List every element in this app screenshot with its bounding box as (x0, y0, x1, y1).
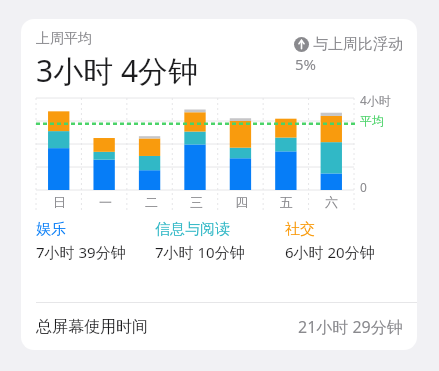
staticText: 7小时 10分钟 (155, 242, 245, 262)
staticText: 上周平均 (36, 30, 92, 48)
staticText: 6小时 20分钟 (285, 242, 375, 262)
button[interactable]: 社交 (285, 220, 403, 262)
staticText: 六 (325, 194, 338, 210)
button[interactable]: 娱乐 (36, 220, 155, 262)
staticText: 0 (360, 179, 367, 195)
staticText: 4小时 (360, 92, 391, 108)
staticText: 社交 (285, 220, 315, 239)
staticText: 二 (145, 194, 158, 210)
staticText: 一 (99, 194, 112, 210)
staticText: 日 (53, 194, 66, 210)
button[interactable]: 信息与阅读 (155, 220, 285, 262)
button[interactable]: 总屏幕使用时间 (21, 303, 417, 350)
staticText: 娱乐 (36, 220, 66, 239)
staticText: 五 (280, 194, 293, 210)
staticText: 三 (190, 194, 203, 210)
staticText: 总屏幕使用时间 (36, 317, 148, 337)
staticText: 21小时 29分钟 (298, 316, 403, 338)
staticText: 四 (235, 194, 248, 210)
staticText: 3小时 4分钟 (36, 50, 199, 91)
staticText: 信息与阅读 (155, 220, 230, 239)
staticText: 平均 (360, 113, 384, 128)
staticText: 5% (295, 54, 317, 74)
button[interactable]: 上周平均 (21, 19, 417, 350)
staticText: 7小时 39分钟 (36, 242, 126, 262)
other: Increase (294, 37, 309, 52)
staticText: 与上周比浮动 (313, 35, 403, 54)
